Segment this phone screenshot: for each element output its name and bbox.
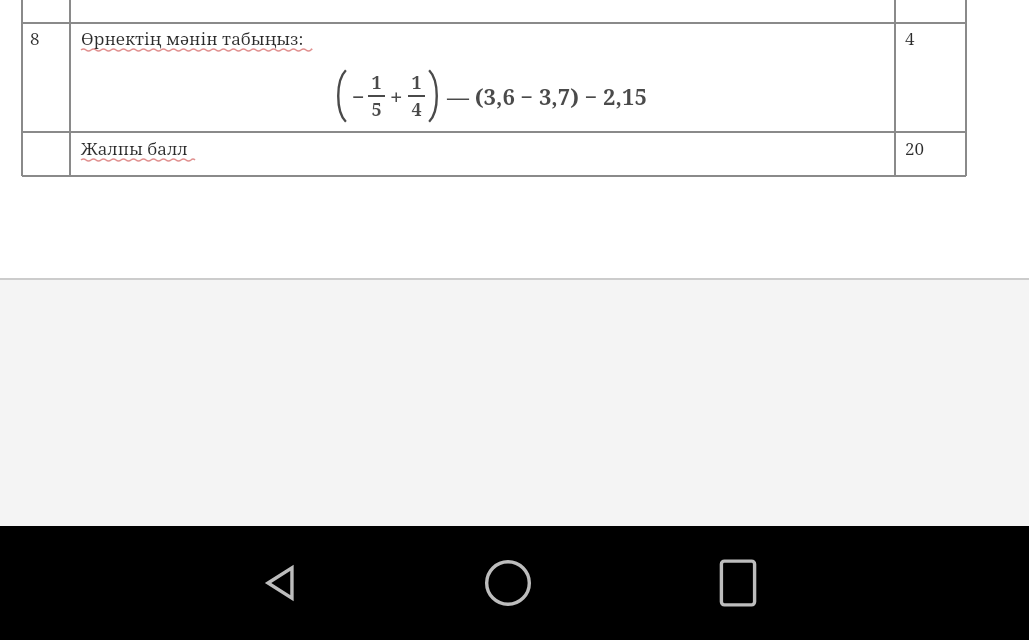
staticText: 1: [371, 70, 382, 95]
staticText: 1: [411, 70, 422, 95]
staticText: 4: [411, 97, 422, 122]
button[interactable]: Back: [232, 526, 328, 640]
staticText: Өрнектің мәнін табыңыз:: [81, 27, 304, 50]
staticText: 20: [905, 137, 925, 160]
staticText: 5: [371, 97, 382, 122]
staticText: — (3,6 − 3,7) − 2,15: [447, 81, 647, 111]
staticText: Жалпы балл: [81, 137, 188, 160]
staticText: −: [352, 81, 365, 111]
staticText: 8: [30, 27, 40, 50]
staticText: 4: [905, 27, 915, 50]
button[interactable]: Home: [460, 526, 556, 640]
button[interactable]: Recent apps: [690, 526, 786, 640]
staticText: +: [390, 81, 403, 111]
